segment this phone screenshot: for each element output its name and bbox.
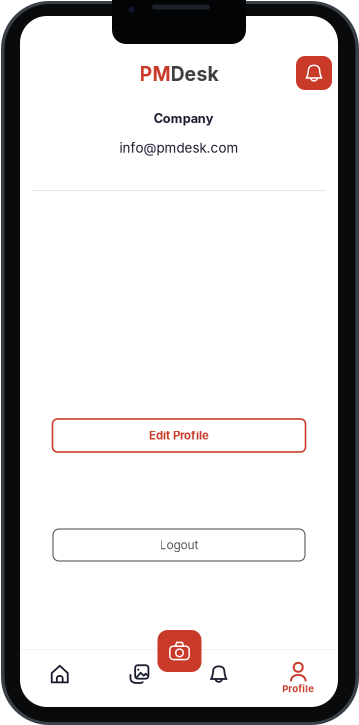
button[interactable]: Edit Profile xyxy=(52,419,305,452)
staticText: Edit Profile xyxy=(149,429,209,442)
staticText: Logout xyxy=(159,538,198,552)
button[interactable]: Home xyxy=(20,650,99,707)
staticText: info@pmdesk.com xyxy=(119,140,238,156)
staticText: Company xyxy=(154,111,214,126)
button[interactable]: Gallery xyxy=(99,650,179,707)
staticText: Profile xyxy=(282,683,314,694)
button[interactable]: Camera xyxy=(157,630,201,672)
button[interactable]: Notifications xyxy=(296,56,332,90)
button[interactable]: Profile xyxy=(258,650,338,707)
button[interactable]: Logout xyxy=(53,529,305,561)
staticText: PM xyxy=(139,62,170,86)
button[interactable]: Notifications xyxy=(179,650,258,707)
staticText: Desk xyxy=(170,62,218,86)
